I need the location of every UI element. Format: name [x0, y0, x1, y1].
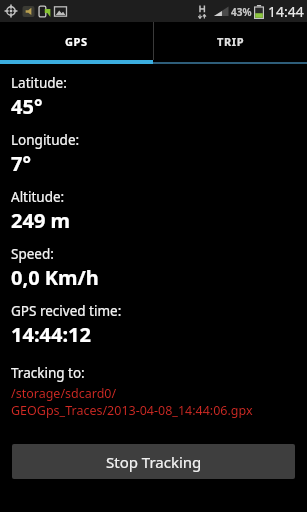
- staticText: 14:44:12: [11, 321, 91, 348]
- staticText: Latitude:: [11, 74, 67, 92]
- staticText: GPS: [65, 34, 88, 49]
- staticText: 45°: [11, 93, 43, 120]
- staticText: Altitude:: [11, 188, 65, 206]
- staticText: 249 m: [11, 207, 71, 234]
- staticText: 0,0 Km/h: [11, 264, 99, 291]
- staticText: Stop Tracking: [106, 452, 202, 472]
- staticText: Longitude:: [11, 131, 80, 149]
- staticText: /storage/sdcard0/: [11, 385, 117, 402]
- staticText: TRIP: [217, 34, 245, 49]
- staticText: 43%: [231, 5, 252, 19]
- staticText: 7°: [11, 150, 31, 177]
- staticText: Speed:: [11, 245, 54, 263]
- button[interactable]: TRIP: [154, 22, 307, 60]
- staticText: 14:44: [268, 2, 304, 21]
- button[interactable]: GPS: [0, 22, 153, 60]
- button[interactable]: Stop Tracking: [12, 444, 295, 479]
- staticText: GPS recived time:: [11, 302, 122, 320]
- staticText: Tracking to:: [11, 364, 85, 382]
- staticText: GEOGps_Traces/2013-04-08_14:44:06.gpx: [11, 402, 253, 419]
